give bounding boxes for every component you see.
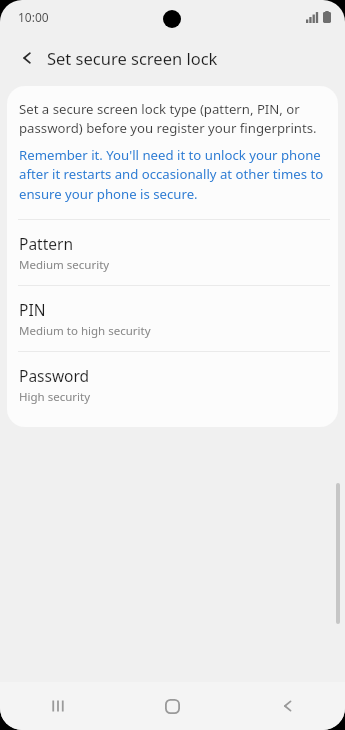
button[interactable]: Recent apps (0, 682, 115, 730)
button[interactable]: Back (230, 682, 345, 730)
staticText: Remember it. You'll need it to unlock yo… (19, 146, 324, 203)
button[interactable]: Pattern (7, 220, 338, 285)
staticText: 10:00 (18, 9, 49, 25)
button[interactable]: PIN (7, 286, 338, 351)
staticText: Medium to high security (19, 323, 151, 339)
button[interactable]: Navigate up (8, 38, 48, 78)
staticText: High security (19, 389, 91, 405)
staticText: Set secure screen lock (47, 47, 218, 69)
button[interactable]: Home (115, 682, 230, 730)
staticText: Set a secure screen lock type (pattern, … (19, 100, 324, 137)
staticText: Pattern (19, 233, 73, 254)
button[interactable]: Password (7, 352, 338, 417)
staticText: Password (19, 365, 90, 386)
staticText: PIN (19, 299, 46, 320)
staticText: Medium security (19, 257, 110, 273)
